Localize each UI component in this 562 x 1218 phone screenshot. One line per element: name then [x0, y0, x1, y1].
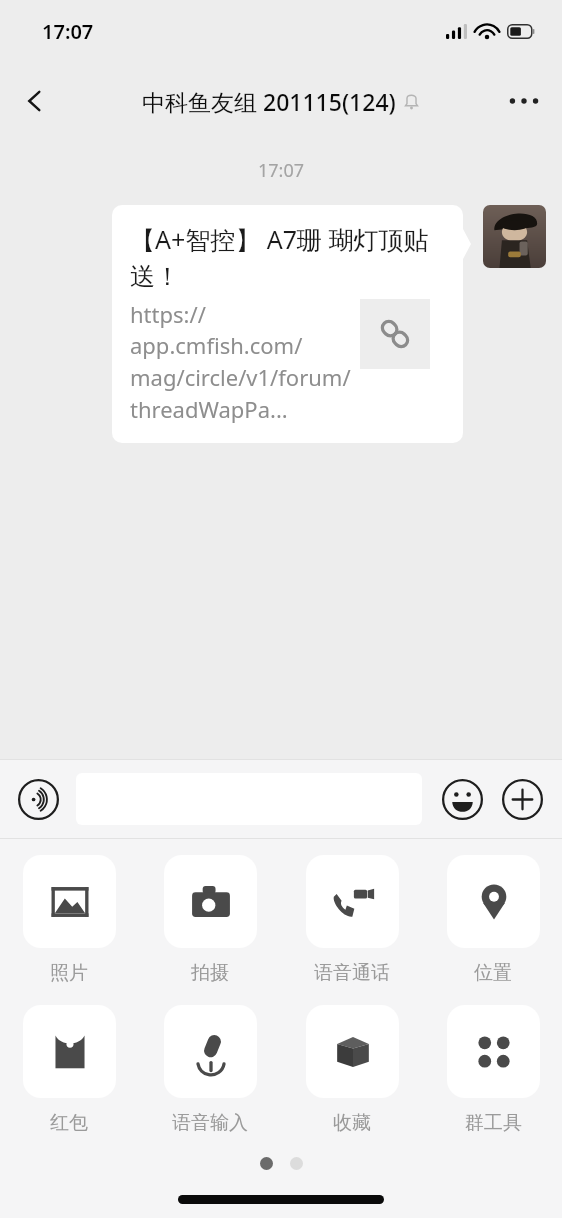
button[interactable]: Sender avatar — [483, 205, 546, 268]
staticText: https://app.cmfish.com/mag/circle/v1/for… — [130, 299, 352, 425]
button[interactable]: 收藏 — [305, 1005, 399, 1135]
button[interactable]: Back — [10, 76, 60, 126]
staticText: 红包 — [50, 1111, 88, 1135]
button[interactable]: Voice message — [16, 777, 60, 821]
button[interactable]: 位置 — [446, 855, 540, 985]
staticText: 位置 — [474, 961, 512, 985]
staticText: 中科鱼友组 201115(124) — [142, 86, 396, 117]
staticText: 拍摄 — [191, 961, 229, 985]
button[interactable]: 语音输入 — [163, 1005, 257, 1135]
button[interactable]: Emoji — [440, 777, 484, 821]
staticText: 17:07 — [42, 18, 94, 45]
staticText: 【A+智控】 A7珊 瑚灯顶贴送！ — [130, 222, 447, 292]
staticText: 语音通话 — [314, 961, 390, 985]
button[interactable]: More actions — [500, 777, 544, 821]
staticText: 语音输入 — [172, 1111, 248, 1135]
button[interactable]: 语音通话 — [305, 855, 399, 985]
staticText: 照片 — [50, 961, 88, 985]
button[interactable]: 【A+智控】 A7珊 瑚灯顶贴送！ — [112, 205, 463, 443]
button[interactable]: 群工具 — [446, 1005, 540, 1135]
button[interactable]: 红包 — [22, 1005, 116, 1135]
button[interactable]: More options — [498, 75, 550, 127]
button[interactable]: 拍摄 — [163, 855, 257, 985]
staticText: 群工具 — [465, 1111, 522, 1135]
button[interactable]: 照片 — [22, 855, 116, 985]
staticText: 17:07 — [0, 158, 562, 183]
staticText: 收藏 — [333, 1111, 371, 1135]
